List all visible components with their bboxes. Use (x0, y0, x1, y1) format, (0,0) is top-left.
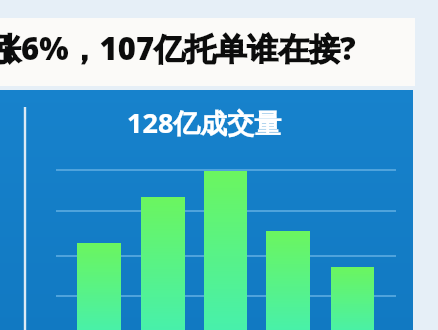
button[interactable]: 128亿成交量 (127, 104, 282, 141)
button[interactable]: 涨6%，107亿托单谁在接? (0, 27, 356, 69)
